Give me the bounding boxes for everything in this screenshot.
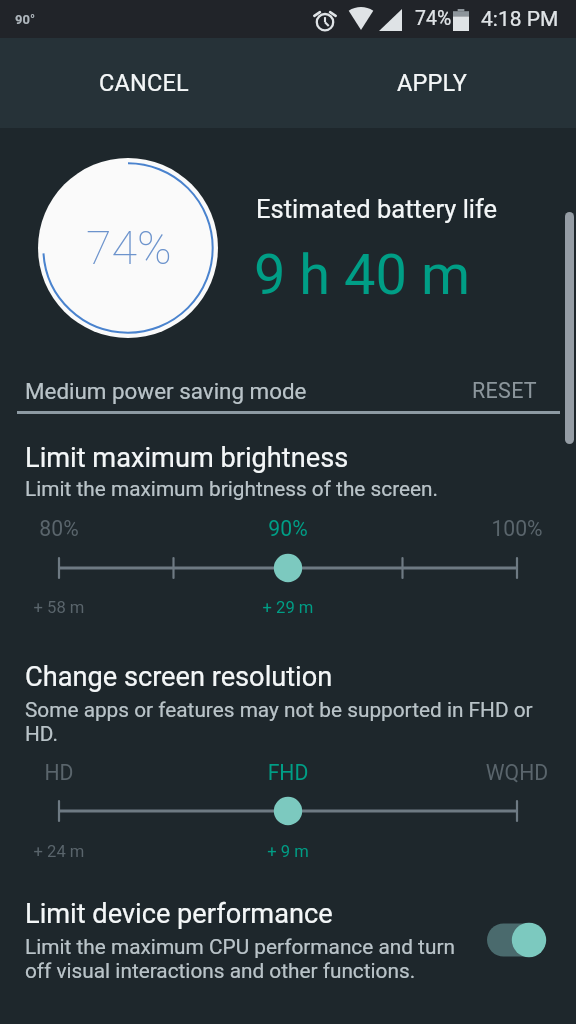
staticText: 74% (86, 221, 172, 275)
staticText: HD (0, 760, 119, 785)
staticText: + 9 m (228, 842, 348, 861)
button[interactable] (0, 791, 576, 831)
button[interactable] (0, 548, 576, 588)
button[interactable] (0, 650, 576, 870)
staticText: RESET (472, 378, 537, 403)
staticText: 9 h 40 m (254, 242, 471, 308)
staticText: FHD (228, 760, 348, 785)
staticText: 74% (415, 7, 452, 30)
staticText: Limit maximum brightness (25, 442, 349, 474)
button[interactable]: APPLY (288, 38, 576, 128)
staticText: CANCEL (99, 69, 189, 97)
staticText: + 58 m (0, 598, 119, 617)
staticText: 90° (15, 12, 35, 27)
staticText: + 29 m (228, 598, 348, 617)
other: Wi-Fi (347, 8, 375, 30)
staticText: 4:18 PM (481, 7, 559, 32)
staticText: Limit the maximum CPU performance and tu… (25, 935, 475, 983)
staticText: + 24 m (0, 842, 119, 861)
staticText: 90% (228, 516, 348, 541)
button[interactable]: CANCEL (0, 38, 288, 128)
staticText: APPLY (397, 69, 468, 97)
staticText: 100% (457, 516, 576, 541)
button[interactable] (0, 888, 576, 998)
staticText: Limit the maximum brightness of the scre… (25, 477, 439, 501)
button[interactable] (0, 430, 576, 630)
staticText: Change screen resolution (25, 661, 333, 693)
staticText: Estimated battery life (256, 194, 498, 224)
staticText: Some apps or features may not be support… (25, 698, 555, 746)
staticText: Limit device performance (25, 898, 333, 930)
button[interactable]: Limit device performance, on (487, 921, 547, 959)
other: Mobile signal (379, 9, 402, 31)
staticText: 80% (0, 516, 119, 541)
staticText: WQHD (457, 760, 576, 785)
button[interactable] (0, 366, 576, 412)
other: Battery 74 percent (453, 9, 469, 31)
staticText: Medium power saving mode (25, 378, 307, 404)
other: Alarm set (313, 9, 337, 33)
